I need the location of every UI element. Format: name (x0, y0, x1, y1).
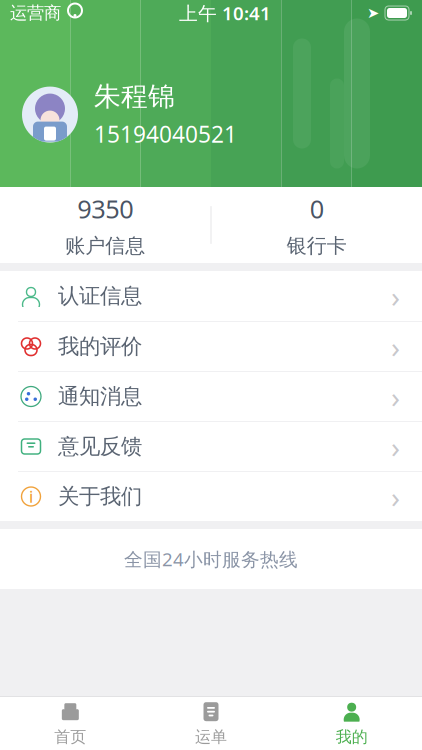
staticText: i (29, 486, 33, 507)
staticText: ➤ (367, 5, 379, 21)
button[interactable]: i (0, 471, 422, 521)
staticText: › (391, 327, 400, 366)
staticText: 9350 (77, 192, 133, 225)
staticText: 我的评价 (58, 333, 142, 360)
staticText: 上午 10:41 (179, 1, 271, 25)
staticText: › (391, 377, 400, 416)
staticText: 15194040521 (94, 119, 237, 149)
staticText: 全国24小时服务热线 (124, 547, 298, 571)
staticText: 首页 (54, 727, 86, 747)
staticText: 账户信息 (65, 233, 145, 258)
staticText: 银行卡 (287, 233, 347, 258)
staticText: 运单 (195, 727, 227, 747)
staticText: 我的 (336, 727, 368, 747)
staticText: 意见反馈 (58, 433, 142, 460)
staticText: 运营商 (10, 2, 61, 24)
button[interactable]: 9350 (0, 176, 210, 274)
button[interactable]: 我的 (281, 697, 422, 750)
button[interactable]: 意见反馈 (0, 421, 422, 471)
staticText: 朱程锦 (94, 80, 175, 113)
staticText: › (391, 276, 400, 315)
button[interactable]: 通知消息 (0, 371, 422, 421)
button[interactable]: 全国24小时服务热线 (0, 529, 422, 589)
button[interactable]: 认证信息 (0, 271, 422, 321)
button[interactable]: 首页 (0, 697, 141, 750)
staticText: 认证信息 (58, 283, 142, 309)
staticText: › (391, 427, 400, 466)
button[interactable]: 我的评价 (0, 321, 422, 371)
staticText: 关于我们 (58, 483, 142, 510)
button[interactable]: 运单 (141, 697, 281, 750)
button[interactable]: 0 (211, 176, 422, 274)
staticText: 0 (310, 192, 324, 225)
staticText: 通知消息 (58, 383, 142, 410)
staticText: › (391, 477, 400, 516)
